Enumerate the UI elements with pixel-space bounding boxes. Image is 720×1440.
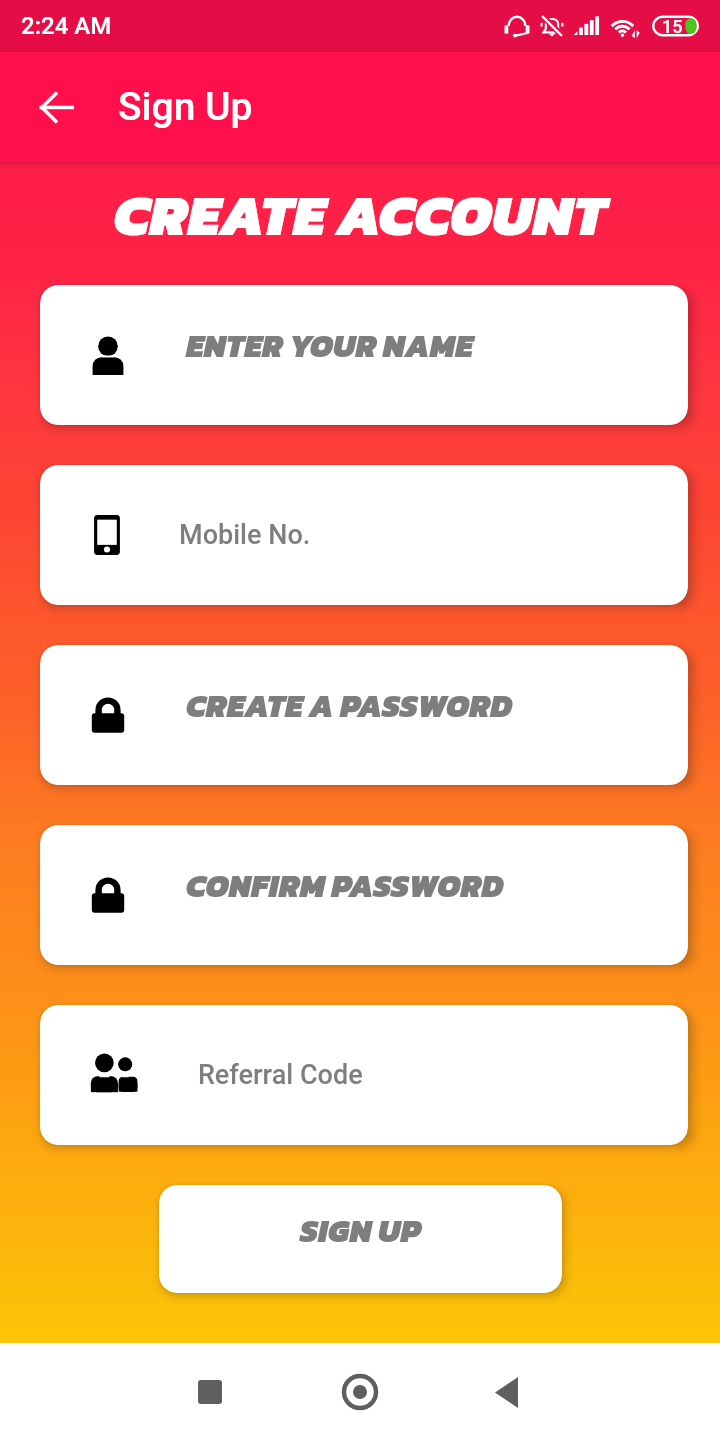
staticText: 2:24 AM	[21, 12, 112, 40]
staticText: CONFIRM PASSWORD	[186, 862, 504, 910]
other: Battery 15 percent	[652, 13, 700, 39]
button[interactable]: CONFIRM PASSWORD	[40, 825, 688, 965]
staticText: CREATE ACCOUNT	[0, 171, 720, 258]
staticText: SIGN UP	[300, 1207, 421, 1255]
other: Headset connected	[504, 13, 530, 39]
staticText: Referral Code	[198, 1059, 363, 1091]
button[interactable]: ENTER YOUR NAME	[40, 285, 688, 425]
button[interactable]: Back	[471, 1357, 541, 1427]
staticText: 15	[662, 16, 683, 37]
other: Mobile signal	[573, 11, 603, 41]
button[interactable]: Back	[30, 81, 82, 133]
other: Notifications silenced	[539, 13, 565, 39]
button[interactable]: CREATE A PASSWORD	[40, 645, 688, 785]
button[interactable]: Referral Code	[40, 1005, 688, 1145]
button[interactable]: SIGN UP	[159, 1185, 562, 1293]
button[interactable]: Home	[325, 1357, 395, 1427]
staticText: Mobile No.	[179, 519, 311, 551]
other: Wi-Fi	[610, 11, 641, 42]
staticText: Sign Up	[118, 84, 253, 130]
button[interactable]: Mobile No.	[40, 465, 688, 605]
staticText: CREATE A PASSWORD	[186, 682, 513, 730]
staticText: ENTER YOUR NAME	[186, 322, 473, 370]
button[interactable]: Recent apps	[175, 1357, 245, 1427]
